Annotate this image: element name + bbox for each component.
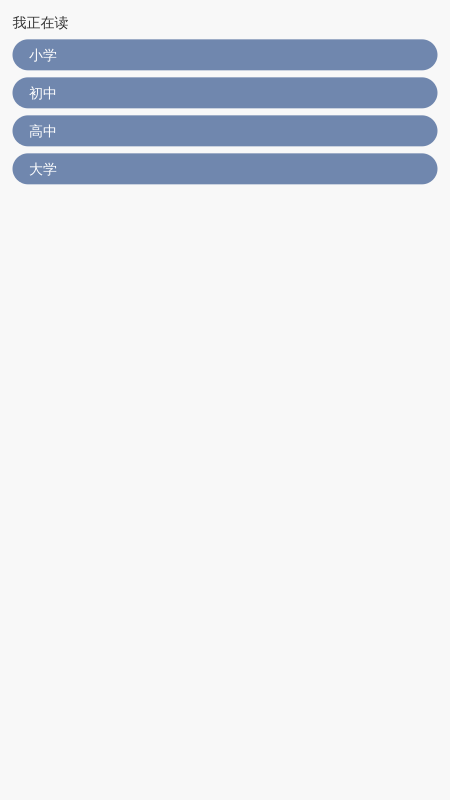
button[interactable]: 初中 (12, 77, 437, 108)
staticText: 初中 (29, 84, 57, 102)
staticText: 我正在读 (12, 14, 68, 32)
staticText: 高中 (29, 122, 57, 140)
button[interactable]: 高中 (12, 115, 437, 146)
staticText: 小学 (29, 46, 57, 64)
button[interactable]: 小学 (12, 39, 437, 70)
button[interactable]: 大学 (12, 153, 437, 184)
staticText: 大学 (29, 160, 57, 178)
